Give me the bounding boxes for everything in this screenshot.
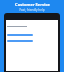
- button[interactable]: [7, 40, 33, 42]
- staticText: Fast, friendly help: [19, 8, 45, 12]
- staticText: Customer Service: [15, 2, 50, 7]
- button[interactable]: [7, 34, 33, 36]
